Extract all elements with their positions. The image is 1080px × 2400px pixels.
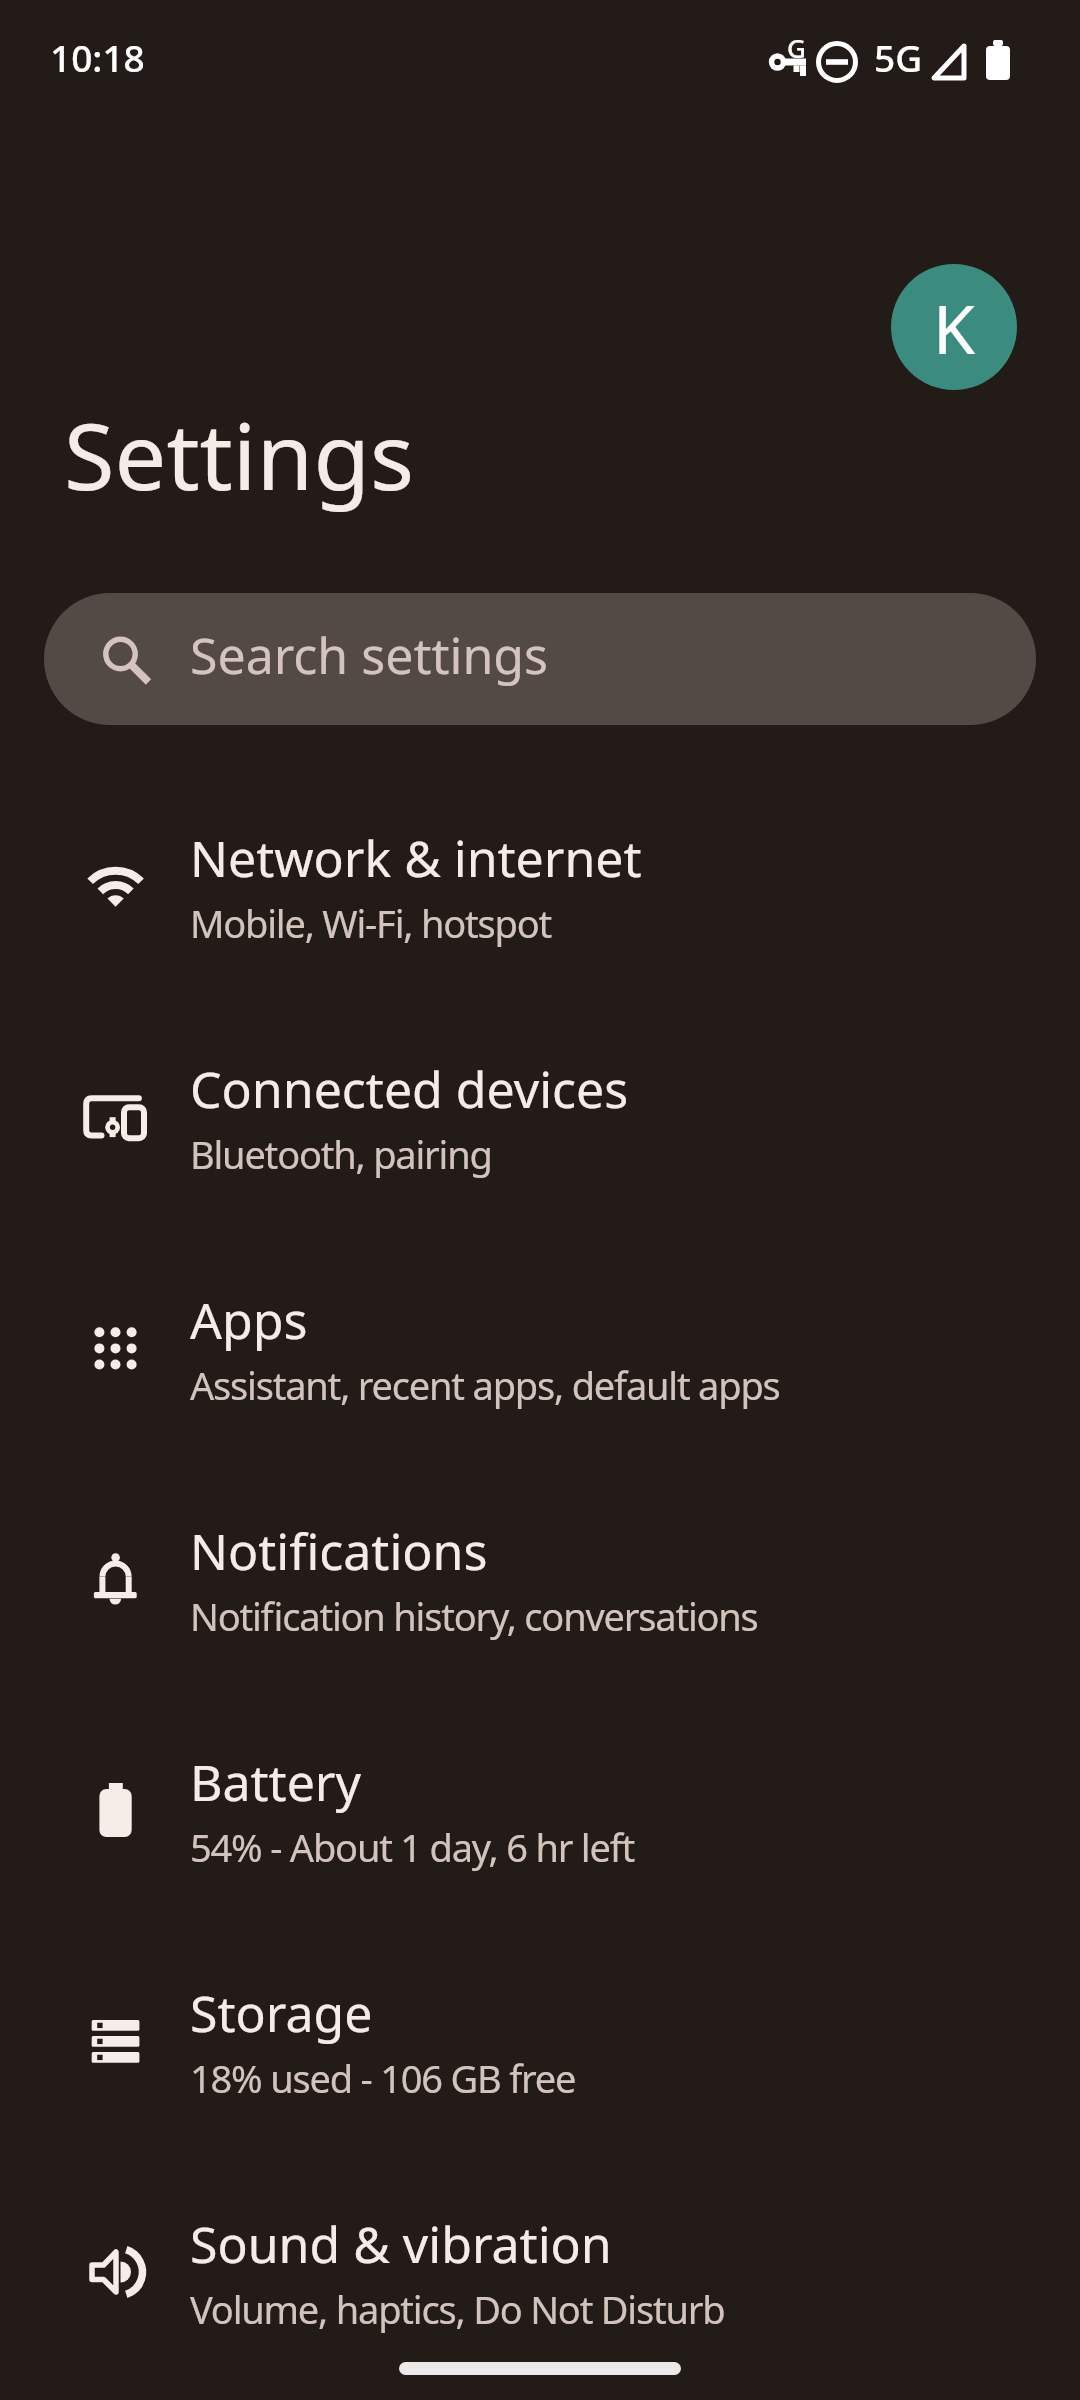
- staticText: Notifications: [190, 1517, 488, 1585]
- staticText: 10:18: [50, 32, 145, 82]
- staticText: Apps: [190, 1286, 308, 1354]
- staticText: Battery: [190, 1748, 361, 1816]
- button[interactable]: Notifications: [0, 1465, 1080, 1696]
- staticText: 5G: [874, 32, 923, 82]
- staticText: Mobile, Wi-Fi, hotspot: [190, 897, 551, 949]
- staticText: Storage: [190, 1979, 373, 2047]
- button[interactable]: Battery: [0, 1696, 1080, 1927]
- button[interactable]: Apps: [0, 1234, 1080, 1465]
- staticText: Network & internet: [190, 824, 642, 892]
- button[interactable]: Sound & vibration: [0, 2158, 1080, 2389]
- staticText: Sound & vibration: [190, 2210, 612, 2278]
- staticText: Volume, haptics, Do Not Disturb: [190, 2283, 725, 2335]
- staticText: Notification history, conversations: [190, 1590, 758, 1642]
- button[interactable]: Search settings: [44, 593, 1036, 725]
- staticText: Bluetooth, pairing: [190, 1128, 492, 1180]
- staticText: K: [933, 281, 976, 374]
- staticText: Assistant, recent apps, default apps: [190, 1359, 780, 1411]
- staticText: Search settings: [190, 621, 548, 689]
- button[interactable]: Connected devices: [0, 1003, 1080, 1234]
- button[interactable]: Network & internet: [0, 772, 1080, 1003]
- staticText: Settings: [64, 392, 415, 517]
- button[interactable]: Storage: [0, 1927, 1080, 2158]
- staticText: 18% used - 106 GB free: [190, 2052, 576, 2104]
- staticText: G: [787, 30, 806, 65]
- staticText: 54% - About 1 day, 6 hr left: [190, 1821, 635, 1873]
- button[interactable]: K: [891, 264, 1017, 390]
- staticText: Connected devices: [190, 1055, 629, 1123]
